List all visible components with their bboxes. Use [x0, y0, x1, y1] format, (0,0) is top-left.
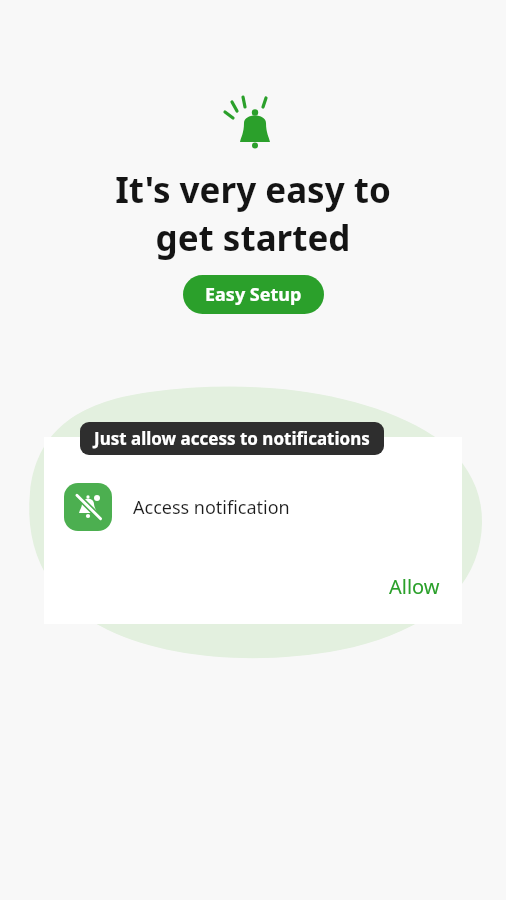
staticText: Allow	[389, 573, 440, 600]
button[interactable]: Allow	[367, 565, 462, 608]
staticText: It's very easy to get started	[115, 166, 391, 261]
button[interactable]: Just allow access to notifications	[80, 422, 384, 455]
button[interactable]: Access notification	[44, 483, 462, 531]
other: Notification bell	[218, 98, 288, 154]
button[interactable]: Easy Setup	[183, 275, 324, 314]
staticText: Easy Setup	[205, 282, 302, 307]
staticText: Just allow access to notifications	[94, 427, 370, 450]
staticText: Access notification	[133, 495, 290, 520]
